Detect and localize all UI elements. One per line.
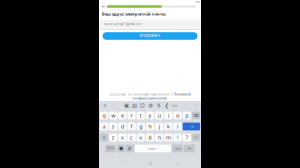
staticText: u bbox=[158, 112, 161, 119]
staticText: ☺ bbox=[139, 102, 145, 109]
staticText: q bbox=[102, 112, 105, 119]
button[interactable]: u bbox=[155, 112, 163, 119]
button[interactable]: ? bbox=[183, 134, 191, 141]
staticText: r bbox=[131, 112, 133, 119]
staticText: montesudima27@gmail.com bbox=[104, 22, 141, 26]
button[interactable]: More bbox=[191, 102, 199, 108]
staticText: ❮ bbox=[164, 102, 168, 109]
staticText: w bbox=[111, 112, 115, 119]
staticText: l bbox=[177, 123, 178, 130]
button[interactable]: Clipboard bbox=[130, 102, 138, 108]
staticText: h bbox=[148, 123, 151, 130]
staticText: ?123 bbox=[107, 147, 114, 150]
button[interactable]: QWERTY bbox=[135, 145, 171, 152]
button[interactable]: ! bbox=[173, 134, 182, 141]
button[interactable]: Политикой bbox=[174, 93, 191, 96]
button[interactable]: → bbox=[183, 123, 200, 130]
staticText: ▮ bbox=[198, 0, 199, 3]
button[interactable]: m bbox=[164, 134, 172, 141]
button[interactable]: c bbox=[127, 134, 136, 141]
staticText: s bbox=[112, 123, 115, 130]
staticText: v bbox=[139, 134, 142, 141]
button[interactable]: ?123 bbox=[105, 145, 116, 152]
staticText: ⌾ bbox=[195, 135, 197, 139]
staticText: ПРОДОЛЖИТЬ bbox=[139, 34, 160, 38]
staticText: ⌫ bbox=[193, 113, 199, 118]
button[interactable]: w bbox=[109, 112, 117, 119]
staticText: ! bbox=[177, 134, 178, 141]
button[interactable]: .com bbox=[172, 145, 183, 152]
staticText: ⇅ bbox=[156, 102, 160, 109]
button[interactable]: ⚙ bbox=[126, 145, 134, 152]
button[interactable]: q bbox=[100, 112, 108, 119]
staticText: e bbox=[121, 112, 124, 119]
button[interactable]: o bbox=[173, 112, 182, 119]
staticText: g bbox=[139, 123, 142, 130]
staticText: ▤ bbox=[132, 102, 137, 109]
button[interactable]: конфиденциальности bbox=[133, 97, 167, 100]
staticText: o bbox=[176, 112, 179, 119]
staticText: ▾ bbox=[195, 0, 196, 3]
button[interactable]: Stickers bbox=[146, 102, 154, 108]
button[interactable]: Translate bbox=[154, 102, 162, 108]
button[interactable]: ⌾ bbox=[192, 134, 200, 141]
button[interactable]: h bbox=[146, 123, 154, 130]
button[interactable]: Text editing bbox=[170, 102, 178, 108]
staticText: □ bbox=[176, 161, 179, 164]
button[interactable]: k bbox=[164, 123, 172, 130]
button[interactable]: b bbox=[146, 134, 154, 141]
button[interactable]: p bbox=[183, 112, 191, 119]
button[interactable]: Google bbox=[100, 102, 109, 108]
staticText: QWERTY bbox=[148, 147, 158, 150]
staticText: y bbox=[148, 112, 151, 119]
staticText: m bbox=[166, 134, 171, 141]
staticText: ⋮ bbox=[193, 103, 197, 108]
button[interactable]: Themes bbox=[122, 102, 130, 108]
button[interactable]: x bbox=[118, 134, 127, 141]
button[interactable]: ⌫ bbox=[192, 112, 200, 119]
button[interactable]: l bbox=[173, 123, 182, 130]
button[interactable]: j bbox=[155, 123, 163, 130]
staticText: i bbox=[168, 112, 169, 119]
button[interactable]: ⇧ bbox=[100, 134, 108, 141]
staticText: Продолжая, вы принимаете наши Условия и bbox=[109, 93, 173, 96]
staticText: → bbox=[190, 124, 193, 129]
button[interactable]: s bbox=[109, 123, 117, 130]
staticText: конфиденциальности bbox=[133, 97, 167, 100]
staticText: ⇧ bbox=[102, 135, 105, 140]
staticText: G bbox=[103, 103, 106, 108]
staticText: .com bbox=[175, 147, 181, 150]
button[interactable]: Recents bbox=[173, 159, 183, 167]
staticText: ↵ bbox=[188, 146, 191, 151]
staticText: z bbox=[112, 134, 115, 141]
button[interactable]: Share bbox=[162, 102, 170, 108]
button[interactable]: n bbox=[155, 134, 163, 141]
button[interactable]: z bbox=[109, 134, 117, 141]
button[interactable]: Emoji bbox=[138, 102, 146, 108]
staticText: ▣ bbox=[124, 102, 129, 109]
staticText: p bbox=[185, 112, 188, 119]
button[interactable]: r bbox=[127, 112, 136, 119]
button[interactable]: d bbox=[118, 123, 127, 130]
button[interactable]: f bbox=[127, 123, 136, 130]
button[interactable]: v bbox=[137, 134, 145, 141]
button[interactable]: e bbox=[118, 112, 127, 119]
button[interactable]: a bbox=[100, 123, 108, 130]
staticText: k bbox=[167, 123, 170, 130]
staticText: a bbox=[102, 123, 105, 130]
button[interactable]: y bbox=[146, 112, 154, 119]
button[interactable]: ПРОДОЛЖИТЬ bbox=[102, 32, 197, 40]
button[interactable]: ☻ bbox=[117, 145, 125, 152]
button[interactable]: i bbox=[164, 112, 172, 119]
staticText: ▭ bbox=[172, 102, 177, 109]
button[interactable]: g bbox=[137, 123, 145, 130]
button[interactable]: ↵ bbox=[184, 145, 195, 152]
button[interactable]: Back bbox=[100, 3, 107, 9]
staticText: c bbox=[130, 134, 133, 141]
button[interactable]: Back bbox=[117, 159, 127, 167]
staticText: x bbox=[121, 134, 124, 141]
staticText: Политикой bbox=[174, 93, 191, 96]
button[interactable]: Home bbox=[145, 159, 155, 167]
button[interactable]: t bbox=[137, 112, 145, 119]
staticText: ✿ bbox=[148, 102, 152, 109]
